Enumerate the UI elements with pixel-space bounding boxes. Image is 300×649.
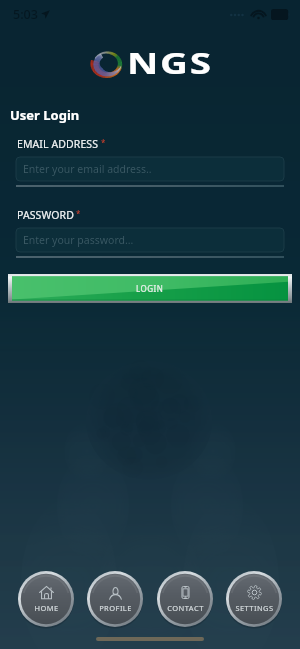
staticText: CONTACT [167,603,204,613]
button[interactable]: PROFILE [87,571,143,627]
staticText: PASSWORD [17,208,74,222]
button[interactable]: LOGIN [8,274,292,303]
button[interactable]: SETTINGS [226,571,282,627]
staticText: * [99,137,106,148]
button[interactable]: CONTACT [157,571,213,627]
staticText: User Login [10,106,80,124]
staticText: NGS [127,44,214,82]
staticText: EMAIL ADDRESS [17,137,99,151]
staticText: HOME [34,603,59,613]
staticText: 5:03 [13,6,38,23]
staticText: Enter your email address.. [23,162,152,176]
staticText: LOGIN [136,283,164,294]
staticText: SETTINGS [235,603,274,613]
button[interactable]: HOME [18,571,74,627]
staticText: Enter your password... [23,233,134,247]
button[interactable]: Enter your password... [16,228,284,252]
button[interactable]: Enter your email address.. [16,157,284,181]
staticText: * [74,208,81,219]
staticText: PROFILE [99,603,132,613]
